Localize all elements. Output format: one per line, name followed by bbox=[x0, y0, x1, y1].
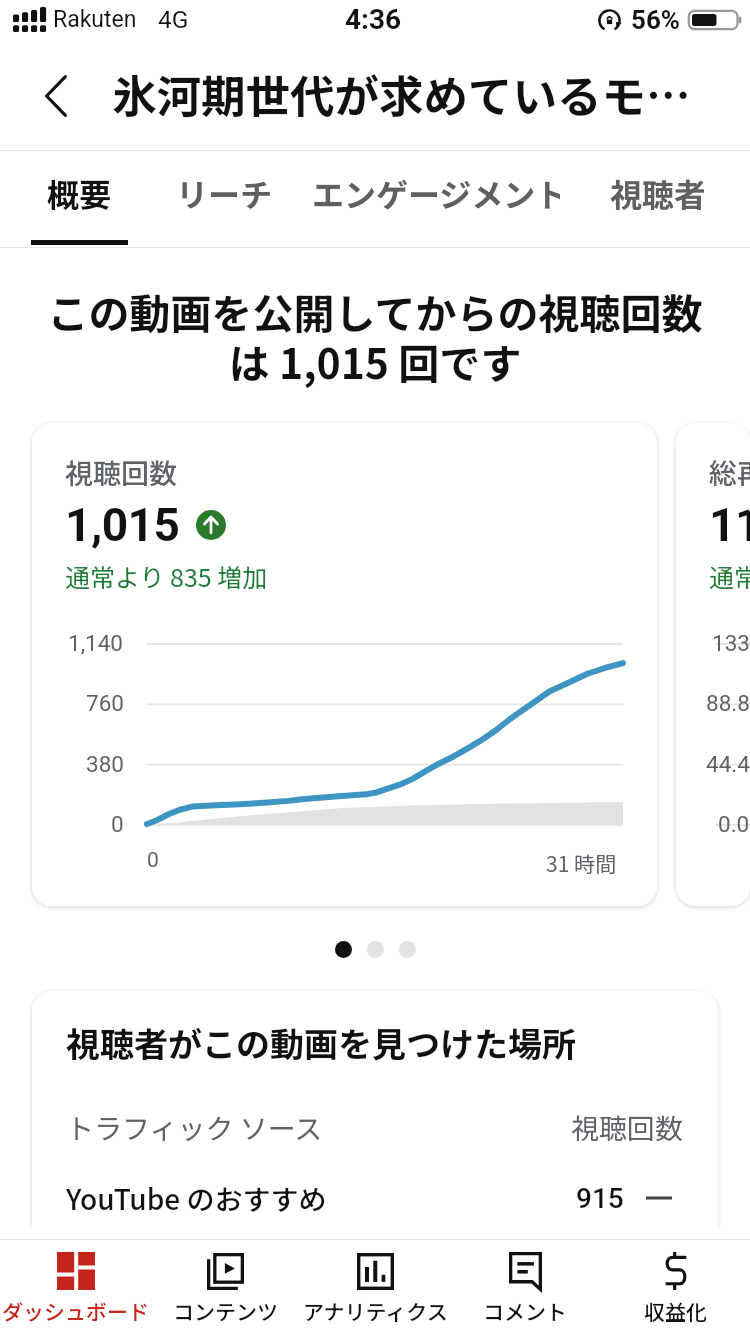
staticText: 概要 bbox=[47, 170, 112, 216]
staticText: コメント bbox=[483, 1296, 567, 1326]
button[interactable]: Back bbox=[0, 53, 97, 150]
button[interactable]: コメント bbox=[450, 1240, 600, 1334]
staticText: 視聴回数 bbox=[65, 452, 178, 493]
staticText: 760 bbox=[86, 690, 124, 716]
staticText: Rakuten bbox=[53, 6, 137, 33]
staticText: 133 bbox=[712, 630, 750, 656]
staticText: 視聴回数 bbox=[571, 1107, 684, 1148]
button[interactable]: YouTube のおすすめ bbox=[66, 1170, 672, 1226]
button[interactable]: 収益化 bbox=[600, 1240, 750, 1334]
button[interactable]: コンテンツ bbox=[150, 1240, 300, 1334]
staticText: エンゲージメント bbox=[312, 170, 560, 216]
button[interactable]: 視聴者 bbox=[610, 151, 704, 248]
button[interactable]: 概要 bbox=[31, 151, 128, 248]
staticText: 44.4 bbox=[706, 751, 750, 777]
staticText: 通常より 835 増加 bbox=[65, 558, 268, 594]
staticText: 4G bbox=[158, 5, 189, 34]
staticText: 11.2 bbox=[709, 498, 750, 552]
staticText: 総再生時間 bbox=[709, 452, 750, 493]
staticText: 1,015 bbox=[65, 498, 180, 552]
staticText: この動画を公開してからの視聴回数 は 1,015 回です bbox=[0, 281, 750, 391]
staticText: 1,140 bbox=[68, 630, 124, 656]
staticText: アナリティクス bbox=[303, 1296, 448, 1326]
staticText: リーチ bbox=[176, 170, 270, 216]
staticText: 56% bbox=[631, 5, 681, 35]
button[interactable]: リーチ bbox=[176, 151, 270, 248]
staticText: トラフィック ソース bbox=[66, 1107, 323, 1148]
staticText: 視聴者がこの動画を見つけた場所 bbox=[66, 1018, 576, 1067]
staticText: 氷河期世代が求めているモ… bbox=[112, 61, 691, 125]
staticText: 視聴者 bbox=[610, 170, 704, 216]
button[interactable]: 総再生時間 bbox=[676, 423, 750, 906]
staticText: 4:36 bbox=[345, 3, 402, 36]
staticText: 収益化 bbox=[644, 1296, 707, 1326]
staticText: ダッシュボード bbox=[2, 1296, 149, 1326]
button[interactable]: 視聴回数 bbox=[32, 423, 657, 906]
staticText: 0 bbox=[111, 811, 124, 837]
staticText: 915 bbox=[576, 1182, 624, 1215]
staticText: 0 bbox=[147, 848, 159, 873]
staticText: 31 時間 bbox=[546, 848, 617, 878]
button[interactable]: エンゲージメント bbox=[312, 151, 560, 248]
staticText: 380 bbox=[86, 751, 124, 777]
button[interactable]: アナリティクス bbox=[300, 1240, 450, 1334]
staticText: 通常より 9.5 増加 bbox=[709, 558, 750, 594]
staticText: コンテンツ bbox=[173, 1296, 278, 1326]
staticText: 0.0 bbox=[718, 811, 750, 837]
button[interactable]: ダッシュボード bbox=[0, 1240, 150, 1334]
staticText: YouTube のおすすめ bbox=[66, 1178, 327, 1219]
staticText: 88.8 bbox=[706, 690, 750, 716]
